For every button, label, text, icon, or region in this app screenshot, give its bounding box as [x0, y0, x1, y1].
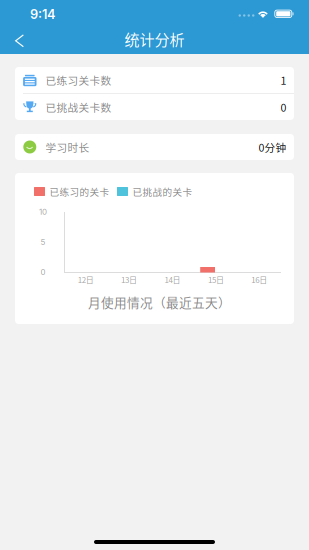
staticText: 已挑战关卡数	[46, 99, 112, 115]
button[interactable]: 已练习关卡数	[15, 67, 294, 93]
staticText: 0分钟	[258, 139, 286, 155]
staticText: 已练习的关卡	[49, 184, 109, 198]
staticText: 统计分析	[124, 28, 184, 50]
staticText: 16日	[251, 274, 267, 285]
staticText: 0	[40, 267, 45, 277]
staticText: 14日	[164, 274, 180, 285]
staticText: 1	[280, 72, 286, 88]
staticText: 月使用情况（最近五天）	[88, 293, 231, 311]
staticText: 9:14	[30, 6, 56, 22]
staticText: 15日	[208, 274, 224, 285]
staticText: 0	[280, 99, 286, 115]
staticText: 已挑战的关卡	[132, 184, 192, 198]
staticText: 12日	[78, 274, 94, 285]
staticText: 10	[39, 207, 47, 217]
staticText: 学习时长	[46, 139, 90, 155]
staticText: 13日	[121, 274, 137, 285]
button[interactable]: 已挑战关卡数	[15, 94, 294, 120]
staticText: 已练习关卡数	[46, 72, 112, 88]
button[interactable]: 学习时长	[15, 134, 294, 160]
button[interactable]: Back	[4, 24, 34, 54]
staticText: 5	[40, 237, 45, 247]
